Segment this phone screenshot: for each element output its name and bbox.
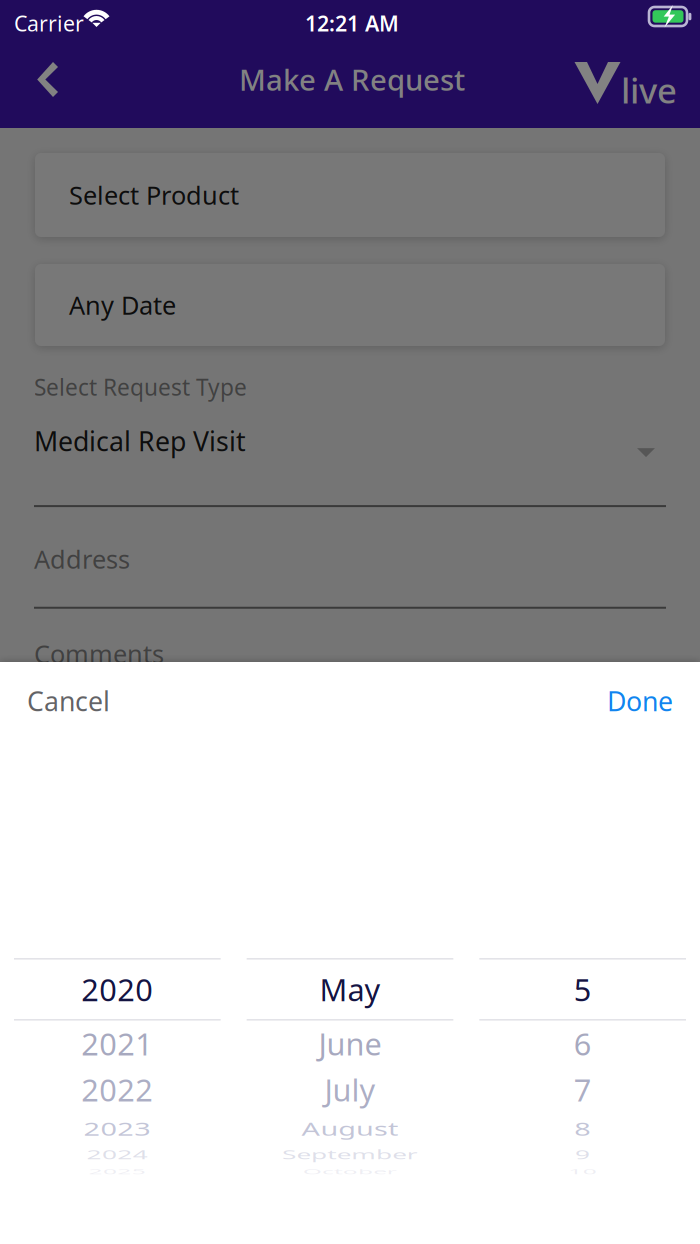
- staticText: 2020: [81, 969, 153, 1010]
- staticText: Select Product: [69, 178, 239, 212]
- button[interactable]: Cancel: [19, 673, 118, 729]
- button[interactable]: Any Date: [35, 264, 665, 346]
- button[interactable]: Address: [0, 542, 700, 576]
- staticText: Medical Rep Visit: [34, 423, 246, 458]
- staticText: 9: [574, 1134, 592, 1175]
- staticText: 2023: [81, 1108, 153, 1149]
- button[interactable]: Done: [599, 673, 681, 729]
- staticText: 2022: [81, 1069, 153, 1110]
- staticText: August: [298, 1108, 401, 1149]
- staticText: July: [324, 1069, 375, 1110]
- button[interactable]: Vlive: [574, 46, 674, 128]
- button[interactable]: Comments: [0, 637, 700, 670]
- staticText: October: [291, 1151, 409, 1192]
- staticText: 6: [574, 1023, 592, 1064]
- staticText: Any Date: [69, 288, 176, 322]
- button[interactable]: Back: [0, 46, 74, 128]
- staticText: Select Request Type: [34, 372, 247, 402]
- staticText: 12:21 AM: [305, 9, 399, 37]
- staticText: 5: [574, 969, 592, 1010]
- staticText: June: [318, 1023, 381, 1064]
- staticText: 10: [565, 1151, 601, 1192]
- staticText: live: [621, 67, 677, 113]
- staticText: 2025: [81, 1151, 153, 1192]
- staticText: Make A Request: [239, 60, 465, 99]
- staticText: Address: [34, 542, 130, 576]
- button[interactable]: Medical Rep Visit: [0, 422, 700, 460]
- staticText: Done: [607, 683, 673, 719]
- staticText: Comments: [34, 637, 164, 670]
- staticText: May: [319, 969, 380, 1010]
- staticText: Carrier: [14, 9, 84, 37]
- staticText: 2024: [81, 1134, 153, 1175]
- button[interactable]: Select Product: [35, 153, 665, 237]
- staticText: Cancel: [27, 683, 110, 719]
- staticText: 2021: [81, 1023, 153, 1064]
- staticText: September: [270, 1134, 429, 1175]
- staticText: 7: [574, 1069, 592, 1110]
- staticText: 8: [574, 1108, 592, 1149]
